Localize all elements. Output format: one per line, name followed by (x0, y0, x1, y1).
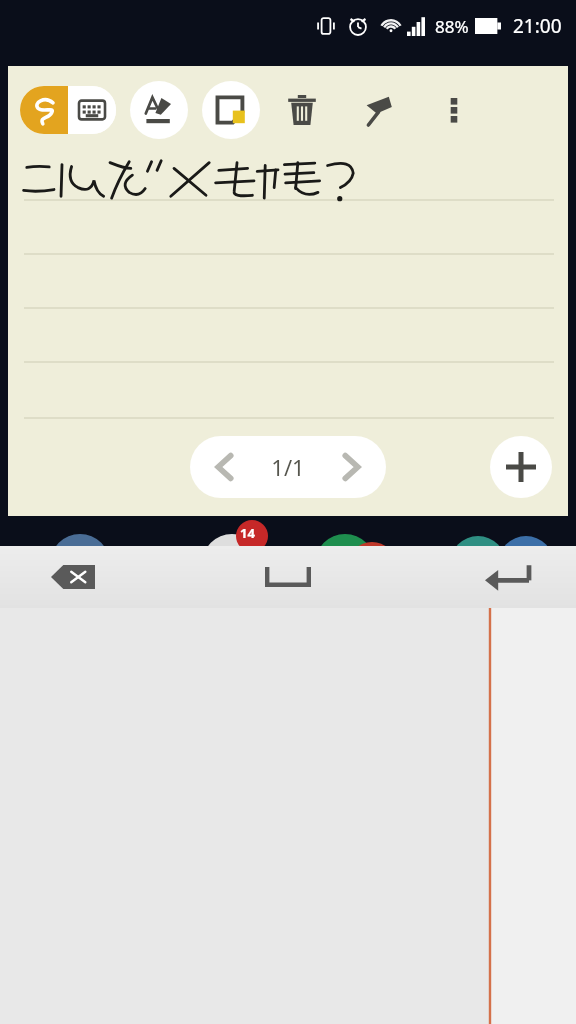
button[interactable]: More options (430, 86, 478, 134)
button[interactable]: Backspace (28, 546, 118, 608)
staticText: 1/1 (271, 452, 305, 482)
button[interactable]: 1/1 (190, 436, 386, 498)
button[interactable]: Note background (202, 81, 260, 139)
staticText: 14 (240, 524, 255, 542)
staticText: 21:00 (513, 13, 562, 39)
button[interactable]: Pen style (130, 81, 188, 139)
button[interactable]: Delete (278, 86, 326, 134)
button[interactable]: Space (228, 546, 348, 608)
staticText: 88% (435, 15, 469, 38)
button[interactable]: Add page (490, 436, 552, 498)
button[interactable]: Enter (462, 546, 552, 608)
button[interactable]: Pin (354, 86, 402, 134)
button[interactable]: Keyboard input (68, 86, 116, 134)
button[interactable]: Handwriting input (20, 86, 68, 134)
